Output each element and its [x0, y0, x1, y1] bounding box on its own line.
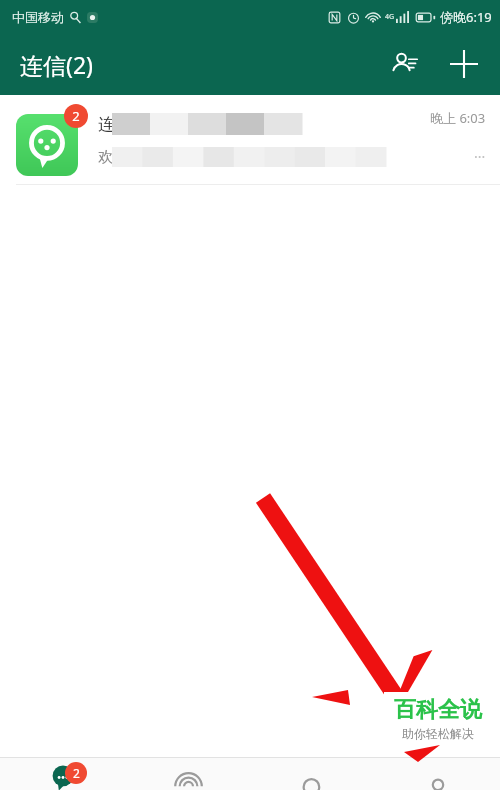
staticText: 2	[73, 765, 80, 781]
staticText: 傍晚6:19	[440, 8, 492, 26]
staticText: 中国移动	[12, 9, 64, 25]
button[interactable]: Contacts	[382, 40, 430, 88]
button[interactable]: Chats tab	[0, 758, 125, 790]
button[interactable]: Tab	[250, 758, 375, 790]
staticText: 连	[98, 114, 115, 135]
button[interactable]: Add	[440, 40, 488, 88]
staticText: ···	[474, 147, 486, 166]
staticText: 欢	[98, 148, 113, 167]
staticText: 百科全说	[394, 696, 482, 724]
staticText: 连信(2)	[20, 49, 93, 80]
button[interactable]: Tab	[375, 758, 500, 790]
button[interactable]: 2	[0, 95, 500, 185]
staticText: 助你轻松解决	[402, 726, 474, 741]
staticText: 2	[72, 107, 80, 125]
staticText: 4G	[385, 12, 395, 22]
button[interactable]: Tab	[125, 758, 250, 790]
staticText: 晚上 6:03	[430, 109, 486, 127]
